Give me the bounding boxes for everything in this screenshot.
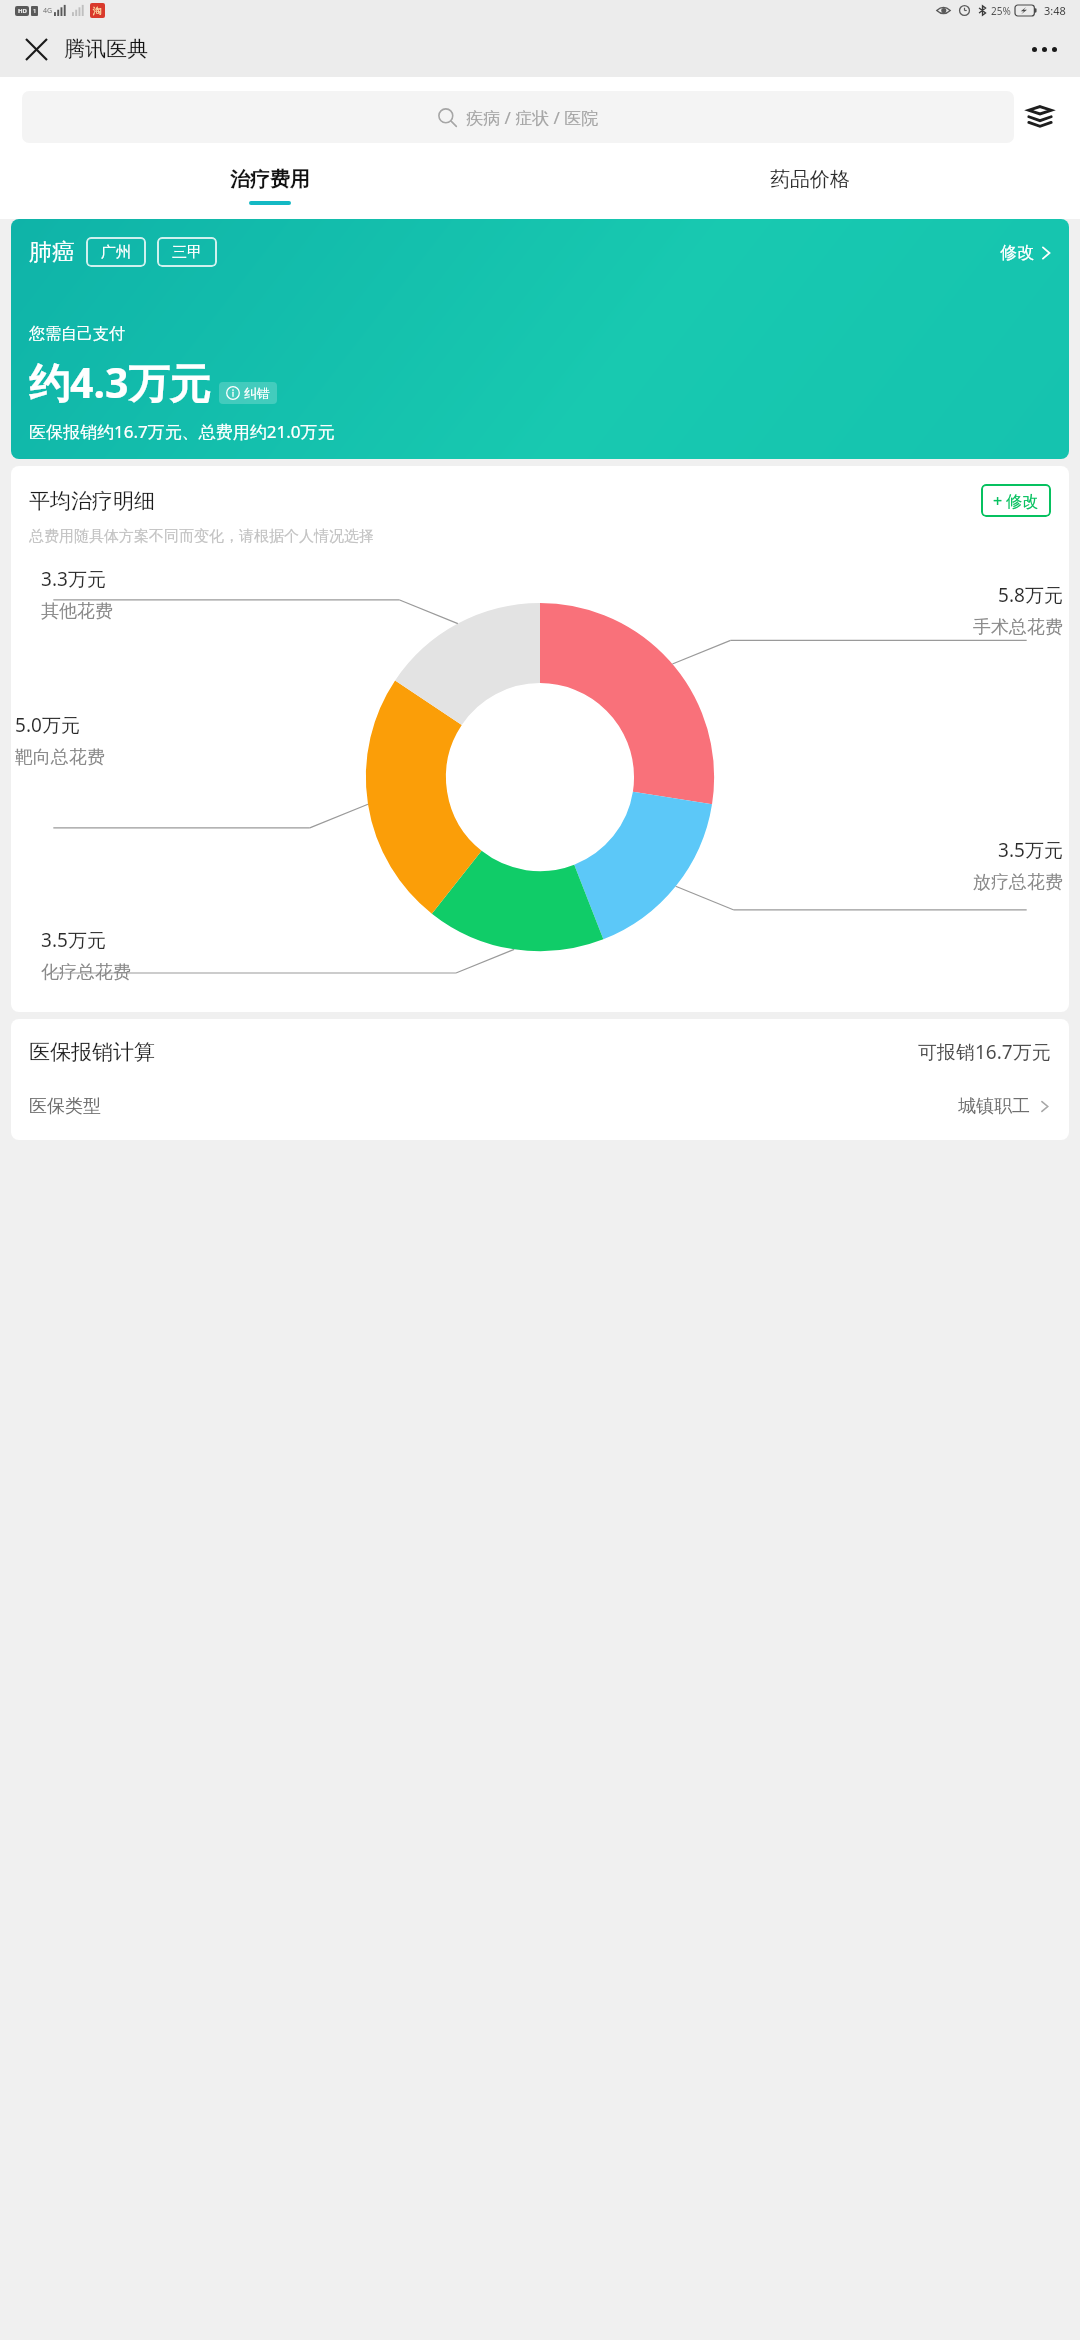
staticText: 1 — [33, 7, 37, 15]
button[interactable]: 医保类型 — [29, 1095, 1051, 1118]
staticText: 医保报销约16.7万元、总费用约21.0万元 — [29, 420, 335, 443]
staticText: 靶向总花费 — [15, 746, 105, 769]
button[interactable]: + 修改 — [981, 484, 1051, 517]
button[interactable]: Close — [14, 27, 58, 71]
staticText: 3.3万元 — [41, 566, 106, 592]
staticText: 其他花费 — [41, 600, 113, 623]
staticText: 广州 — [101, 243, 131, 262]
staticText: 3.5万元 — [41, 927, 106, 953]
staticText: 纠错 — [244, 385, 270, 401]
staticText: 药品价格 — [770, 167, 850, 192]
staticText: 25% — [991, 4, 1011, 18]
button[interactable]: 三甲 — [157, 237, 217, 267]
button[interactable]: 广州 — [86, 237, 146, 267]
staticText: 疾病 / 症状 / 医院 — [466, 106, 599, 129]
button[interactable]: 纠错 — [219, 382, 277, 404]
staticText: 淘 — [93, 5, 102, 16]
staticText: 平均治疗明细 — [29, 488, 155, 514]
staticText: 总费用随具体方案不同而变化，请根据个人情况选择 — [29, 527, 374, 546]
staticText: 医保报销计算 — [29, 1039, 155, 1065]
staticText: 三甲 — [172, 243, 202, 262]
staticText: 约4.3万元 — [29, 354, 211, 410]
staticText: 您需自己支付 — [29, 324, 125, 344]
staticText: HD — [18, 7, 27, 15]
staticText: 化疗总花费 — [41, 961, 131, 984]
staticText: 3:48 — [1044, 3, 1066, 18]
staticText: 腾讯医典 — [64, 36, 148, 62]
button[interactable]: 治疗费用 — [0, 153, 540, 219]
staticText: 城镇职工 — [958, 1095, 1030, 1118]
button[interactable]: More options — [1020, 25, 1068, 73]
staticText: 肺癌 — [29, 238, 75, 267]
button[interactable]: Layers — [1014, 91, 1066, 143]
staticText: 医保类型 — [29, 1095, 101, 1118]
staticText: 3.5万元 — [998, 837, 1063, 863]
staticText: + 修改 — [993, 490, 1039, 512]
staticText: 5.0万元 — [15, 712, 80, 738]
staticText: 5.8万元 — [998, 582, 1063, 608]
staticText: 放疗总花费 — [973, 871, 1063, 894]
button[interactable]: 药品价格 — [540, 153, 1080, 219]
staticText: 4G — [43, 6, 53, 16]
button[interactable]: 肺癌 — [11, 219, 1069, 459]
staticText: 可报销16.7万元 — [918, 1039, 1051, 1065]
button[interactable]: 疾病 / 症状 / 医院 — [22, 91, 1014, 143]
staticText: 手术总花费 — [973, 616, 1063, 639]
button[interactable]: 修改 — [1000, 242, 1053, 263]
staticText: 修改 — [1000, 242, 1034, 263]
staticText: 治疗费用 — [230, 167, 310, 192]
